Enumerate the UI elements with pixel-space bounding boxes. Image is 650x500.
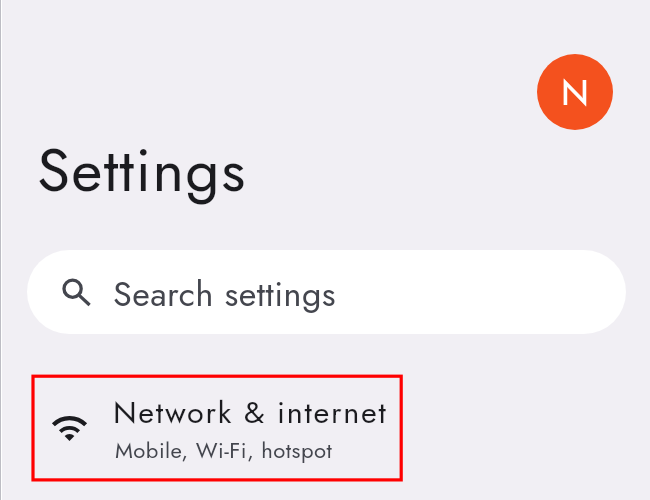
staticText: Search settings [113, 270, 337, 319]
other: Search [27, 250, 626, 334]
staticText: Settings [37, 127, 247, 214]
staticText: Mobile, Wi-Fi, hotspot [115, 434, 333, 466]
staticText: Network & internet [113, 390, 388, 434]
button[interactable]: Account avatar [537, 54, 613, 130]
button[interactable]: Network & internet [22, 372, 412, 486]
button[interactable]: Search [27, 250, 626, 334]
staticText: N [561, 66, 589, 118]
